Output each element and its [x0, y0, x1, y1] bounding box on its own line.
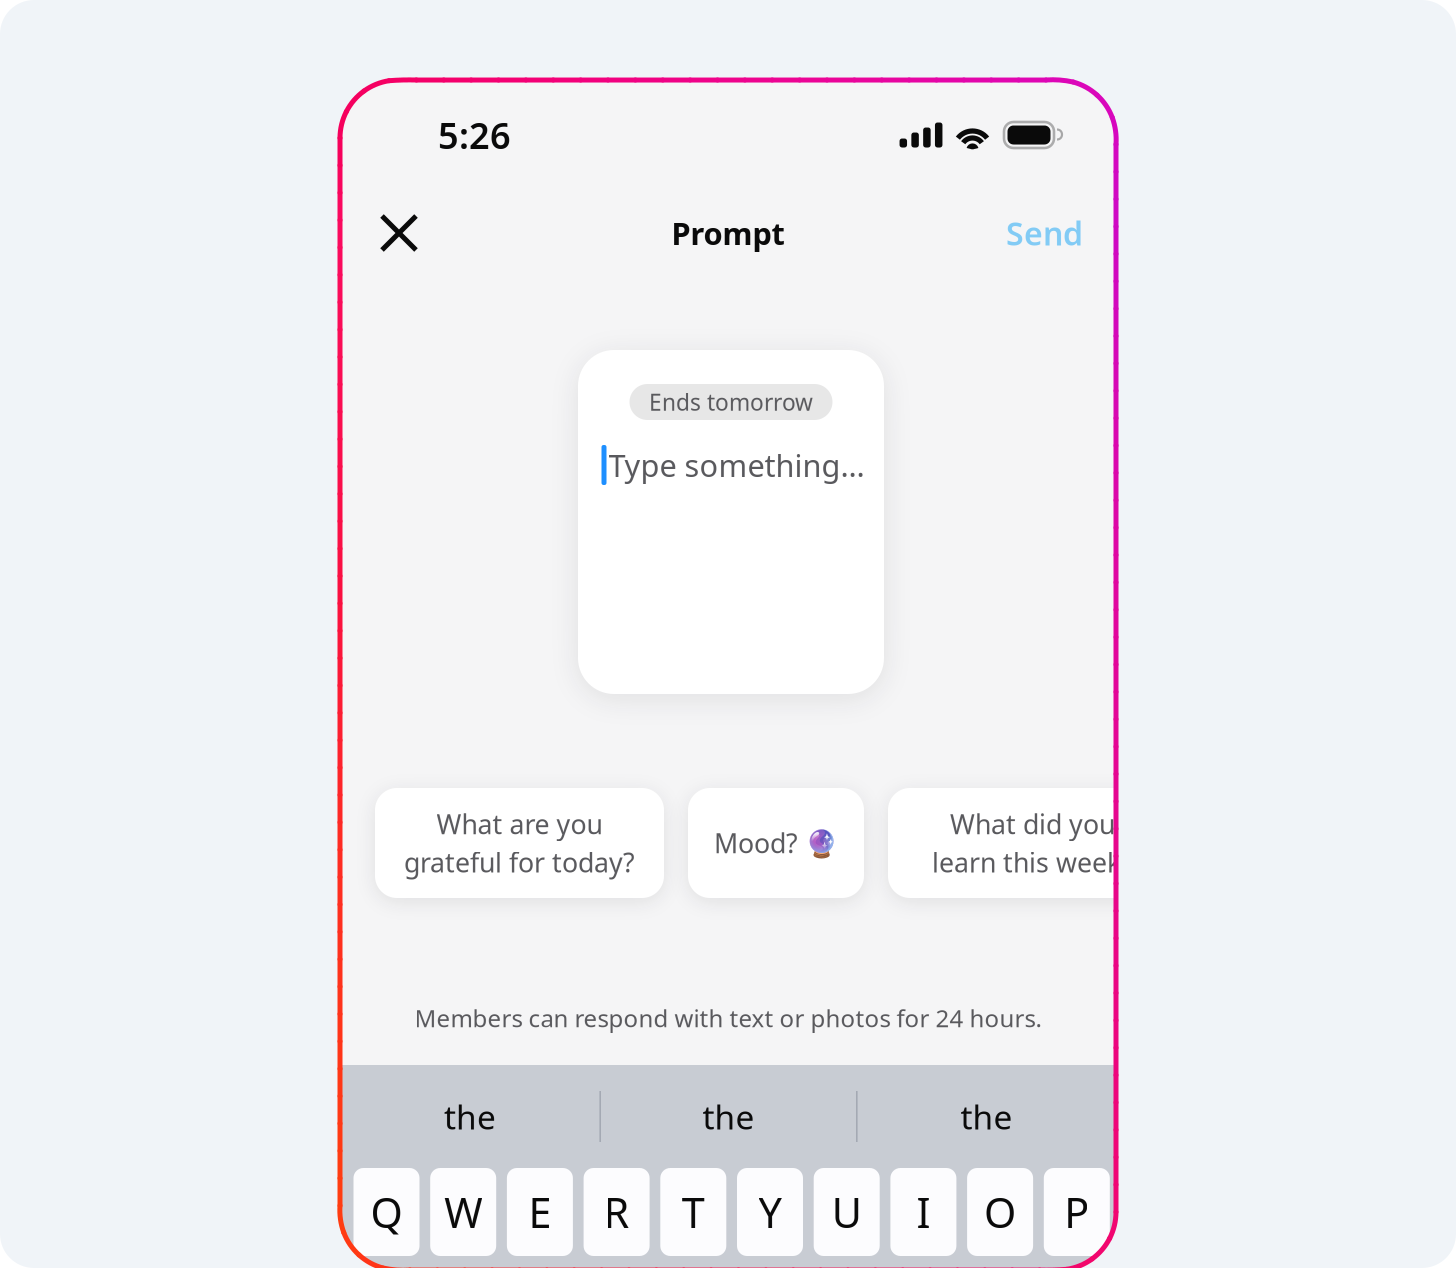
button[interactable]: Mood? 🔮 — [688, 788, 864, 898]
button[interactable]: T — [660, 1168, 726, 1256]
staticText: the — [444, 1094, 496, 1139]
staticText: Prompt — [671, 213, 784, 253]
staticText: What are you — [436, 806, 602, 841]
staticText: I — [916, 1185, 930, 1239]
button[interactable]: Q — [353, 1168, 419, 1256]
button[interactable]: What did you — [888, 788, 1177, 898]
staticText: grateful for today? — [404, 844, 635, 880]
button[interactable]: What are you — [375, 788, 664, 898]
staticText: learn this week? — [932, 844, 1133, 880]
button[interactable]: the — [340, 1065, 599, 1168]
staticText: R — [604, 1185, 630, 1239]
button[interactable]: Close — [368, 202, 430, 264]
button[interactable]: the — [601, 1065, 856, 1168]
staticText: Send — [1006, 212, 1083, 254]
staticText: the — [961, 1094, 1013, 1139]
staticText: U — [832, 1185, 862, 1239]
button[interactable]: U — [814, 1168, 880, 1256]
button[interactable]: I — [890, 1168, 956, 1256]
button[interactable]: P — [1044, 1168, 1110, 1256]
staticText: Members can respond with text or photos … — [414, 1002, 1041, 1034]
staticText: 5:26 — [438, 111, 511, 159]
staticText: Type something... — [608, 445, 864, 485]
staticText: Q — [370, 1185, 402, 1239]
staticText: What did you — [950, 806, 1115, 841]
staticText: T — [682, 1185, 705, 1239]
button[interactable]: W — [430, 1168, 496, 1256]
button[interactable]: O — [967, 1168, 1033, 1256]
staticText: W — [444, 1185, 482, 1239]
button[interactable]: Y — [737, 1168, 803, 1256]
button[interactable]: E — [507, 1168, 573, 1256]
staticText: E — [528, 1185, 551, 1239]
button[interactable]: R — [584, 1168, 650, 1256]
button[interactable]: the — [858, 1065, 1116, 1168]
staticText: Mood? 🔮 — [714, 825, 838, 861]
staticText: O — [984, 1185, 1016, 1239]
button[interactable]: Send — [1006, 202, 1083, 264]
staticText: Y — [758, 1185, 781, 1239]
staticText: P — [1064, 1185, 1089, 1239]
staticText: the — [702, 1094, 754, 1139]
staticText: Ends tomorrow — [649, 387, 813, 417]
